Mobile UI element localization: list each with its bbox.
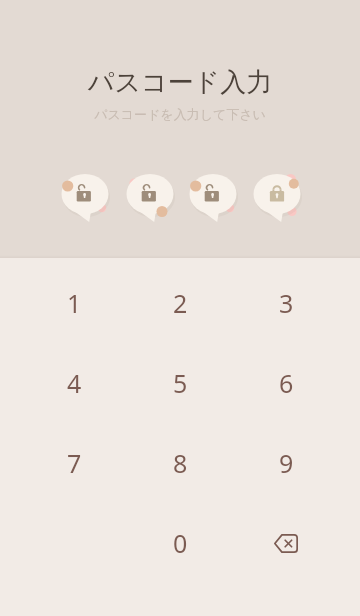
button[interactable]: 8 <box>127 423 233 503</box>
button[interactable]: 4 <box>21 343 127 423</box>
staticText: 6 <box>279 366 294 400</box>
staticText: 4 <box>67 366 82 400</box>
button[interactable]: 2 <box>127 263 233 343</box>
staticText: 3 <box>279 286 294 320</box>
button[interactable]: 0 <box>127 503 233 583</box>
button[interactable]: Delete <box>233 503 339 583</box>
button[interactable]: 1 <box>21 263 127 343</box>
staticText: 7 <box>67 446 82 480</box>
staticText: 1 <box>67 286 82 320</box>
staticText: 8 <box>173 446 188 480</box>
button[interactable]: 7 <box>21 423 127 503</box>
staticText: 2 <box>173 286 188 320</box>
button[interactable]: 9 <box>233 423 339 503</box>
staticText: パスコードを入力して下さい <box>0 106 360 122</box>
staticText: 5 <box>173 366 188 400</box>
staticText: パスコード入力 <box>0 66 360 99</box>
staticText: 9 <box>279 446 294 480</box>
staticText: 0 <box>173 526 188 560</box>
button[interactable]: 3 <box>233 263 339 343</box>
button[interactable]: 5 <box>127 343 233 423</box>
button[interactable]: 6 <box>233 343 339 423</box>
other: Delete <box>274 534 298 553</box>
